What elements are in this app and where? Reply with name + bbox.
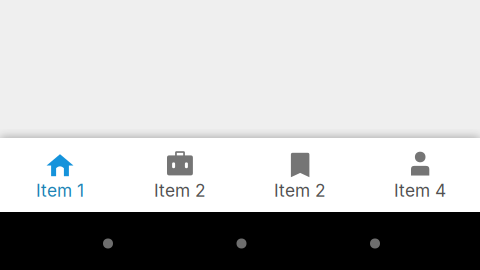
button[interactable]: Navigation key [370,233,380,248]
button[interactable]: Item 2 [240,138,360,212]
button[interactable]: Item 4 [360,138,480,212]
button[interactable]: Navigation key [236,233,246,248]
staticText: Item 2 [154,180,206,201]
staticText: Item 2 [274,180,326,201]
staticText: Item 1 [36,180,84,201]
button[interactable]: Navigation key [103,233,113,248]
staticText: Item 4 [394,180,446,201]
button[interactable]: Item 1 [0,138,120,212]
button[interactable]: Item 2 [120,138,240,212]
